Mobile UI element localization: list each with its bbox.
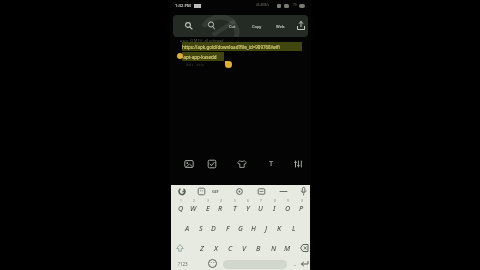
- button[interactable]: [299, 186, 308, 198]
- button[interactable]: K: [273, 219, 286, 237]
- staticText: S: [199, 223, 203, 233]
- button[interactable]: .: [291, 258, 299, 269]
- button[interactable]: A: [181, 219, 194, 237]
- button[interactable]: X: [209, 239, 222, 257]
- button[interactable]: Web: [274, 15, 287, 37]
- staticText: G: [238, 223, 243, 233]
- button[interactable]: [257, 187, 266, 196]
- staticText: R: [218, 203, 223, 213]
- button[interactable]: [207, 258, 218, 269]
- staticText: T: [233, 203, 237, 213]
- staticText: W: [190, 203, 197, 213]
- button[interactable]: [177, 186, 187, 196]
- staticText: 7: [260, 199, 262, 203]
- button[interactable]: [235, 187, 244, 196]
- staticText: A: [185, 223, 190, 233]
- button[interactable]: [197, 187, 206, 196]
- staticText: L: [292, 223, 296, 233]
- staticText: 9: [287, 199, 289, 203]
- button[interactable]: -apt-app-kasedd: [182, 52, 224, 61]
- button[interactable]: G: [234, 219, 247, 237]
- button[interactable]: GIF: [212, 187, 219, 196]
- staticText: U: [258, 203, 263, 213]
- staticText: 6: [247, 199, 249, 203]
- staticText: V: [242, 243, 247, 253]
- button[interactable]: I: [268, 199, 281, 217]
- staticText: Copy: [252, 24, 262, 29]
- button[interactable]: T: [228, 199, 241, 217]
- button[interactable]: Copy: [250, 15, 264, 37]
- button[interactable]: ?123: [174, 258, 192, 269]
- staticText: I: [273, 203, 276, 213]
- button[interactable]: Z: [195, 239, 208, 257]
- button[interactable]: C: [224, 239, 237, 257]
- staticText: Cut: [229, 24, 236, 29]
- button[interactable]: [296, 239, 310, 257]
- staticText: D: [211, 223, 216, 233]
- staticText: 5: [234, 199, 236, 203]
- button[interactable]: B: [252, 239, 265, 257]
- staticText: 3: [207, 199, 209, 203]
- staticText: J: [265, 223, 268, 233]
- button[interactable]: [184, 159, 194, 169]
- staticText: a sig O M Fil all uchrwad: [180, 38, 224, 43]
- staticText: GIF: [212, 189, 219, 194]
- staticText: B: [256, 243, 261, 253]
- staticText: M: [284, 243, 291, 253]
- staticText: -apt-app-kasedd: [182, 54, 217, 60]
- staticText: 8: [274, 199, 276, 203]
- button[interactable]: H: [247, 219, 260, 237]
- button[interactable]: R: [214, 199, 227, 217]
- button[interactable]: L: [287, 219, 300, 237]
- button[interactable]: [203, 15, 219, 37]
- staticText: Y: [246, 203, 250, 213]
- staticText: 46.4KB/s: [256, 3, 270, 7]
- button[interactable]: U: [254, 199, 267, 217]
- button[interactable]: Y: [241, 199, 254, 217]
- button[interactable]: Q: [174, 199, 187, 217]
- button[interactable]: J: [260, 219, 273, 237]
- button[interactable]: https://apk.gold/download?file_id=989768…: [182, 42, 302, 51]
- button[interactable]: W: [187, 199, 200, 217]
- button[interactable]: [278, 187, 289, 196]
- staticText: X: [214, 243, 218, 253]
- button[interactable]: [237, 159, 247, 169]
- button[interactable]: T: [265, 157, 277, 169]
- staticText: 1: [180, 199, 182, 203]
- staticText: Web: [276, 24, 285, 29]
- button[interactable]: F: [221, 219, 234, 237]
- staticText: T: [269, 158, 274, 168]
- button[interactable]: D: [207, 219, 220, 237]
- button[interactable]: [299, 258, 310, 269]
- button[interactable]: [181, 15, 197, 37]
- button[interactable]: N: [267, 239, 280, 257]
- staticText: N: [271, 243, 277, 253]
- staticText: 1:32 PM: [175, 3, 191, 9]
- staticText: https://apk.gold/download?file_id=989768…: [182, 44, 280, 50]
- staticText: 79: [293, 3, 297, 7]
- staticText: data - data: [186, 62, 204, 67]
- staticText: .: [294, 259, 296, 269]
- button[interactable]: M: [281, 239, 294, 257]
- staticText: K: [277, 223, 282, 233]
- staticText: ?123: [178, 261, 188, 267]
- button[interactable]: [293, 159, 303, 169]
- button[interactable]: P: [295, 199, 308, 217]
- button[interactable]: Cut: [227, 15, 238, 37]
- staticText: Q: [178, 203, 184, 213]
- staticText: P: [299, 203, 304, 213]
- staticText: E: [206, 203, 210, 213]
- button[interactable]: S: [194, 219, 207, 237]
- staticText: 0: [301, 199, 303, 203]
- staticText: F: [226, 223, 230, 233]
- button[interactable]: E: [201, 199, 214, 217]
- button[interactable]: [173, 239, 187, 257]
- button[interactable]: V: [238, 239, 251, 257]
- button[interactable]: [293, 15, 308, 37]
- staticText: H: [251, 223, 256, 233]
- button[interactable]: [207, 159, 217, 169]
- staticText: Z: [200, 243, 204, 253]
- staticText: C: [228, 243, 233, 253]
- button[interactable]: O: [281, 199, 294, 217]
